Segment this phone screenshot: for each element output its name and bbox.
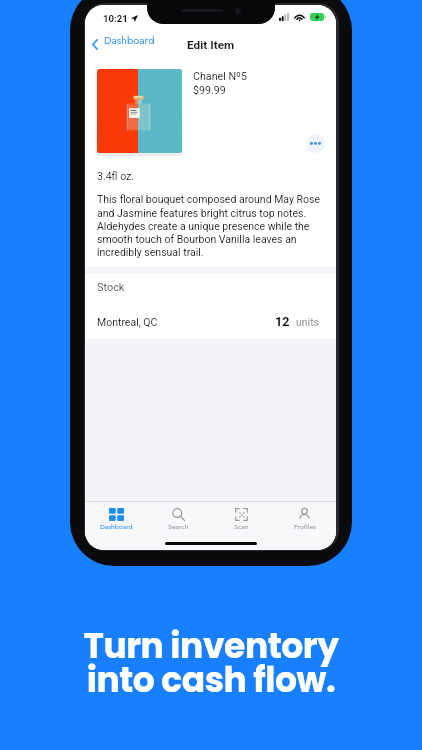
staticText: $99.99 (193, 84, 226, 97)
button[interactable]: Montreal, QC (85, 305, 336, 339)
staticText: Dashboard (100, 521, 133, 531)
staticText: This floral bouquet composed around May … (97, 193, 328, 258)
button[interactable]: Dashboard (90, 33, 157, 55)
staticText: Scan (234, 521, 249, 531)
staticText: Montreal, QC (97, 316, 158, 328)
staticText: Stock (97, 281, 125, 294)
staticText: Profiles (294, 521, 316, 531)
button[interactable]: Search (147, 502, 210, 535)
staticText: 10:21 (103, 13, 128, 24)
button[interactable]: Scan (210, 502, 273, 535)
button[interactable]: Dashboard (85, 502, 147, 535)
staticText: units (296, 316, 319, 328)
staticText: Turn inventory into cash flow. (83, 622, 339, 705)
staticText: Dashboard (104, 32, 155, 48)
staticText: 12 (275, 314, 290, 329)
staticText: 3.4fl oz. (97, 170, 135, 182)
button[interactable]: More options (306, 134, 325, 153)
button[interactable]: Profiles (273, 502, 336, 535)
staticText: Edit Item (187, 38, 235, 52)
staticText: Chanel Nº5 (193, 70, 247, 83)
staticText: Search (168, 521, 189, 531)
